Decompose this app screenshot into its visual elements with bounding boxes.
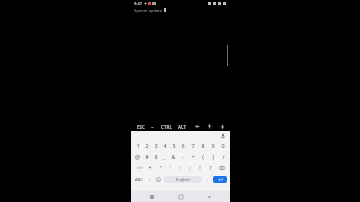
button[interactable]: ' — [165, 162, 175, 173]
button[interactable]: Up — [205, 122, 213, 131]
button[interactable]: Left — [193, 122, 201, 131]
staticText: ? — [209, 164, 212, 171]
staticText: ' — [169, 164, 171, 171]
button[interactable]: 1 — [133, 140, 142, 151]
staticText: / — [222, 153, 225, 160]
button[interactable]: Home — [174, 191, 188, 202]
button[interactable]: 9 — [208, 140, 218, 151]
staticText: 0 — [221, 142, 225, 149]
staticText: ) — [212, 153, 214, 160]
staticText: ESC — [137, 124, 145, 130]
button[interactable]: + — [188, 151, 198, 162]
staticText: 7 — [191, 142, 195, 149]
button[interactable]: Down — [218, 122, 226, 131]
button[interactable]: # — [142, 151, 151, 162]
button[interactable]: - — [178, 151, 188, 162]
button[interactable]: =\< — [133, 162, 145, 173]
button[interactable]: , — [145, 174, 154, 185]
button[interactable]: 0 — [218, 140, 228, 151]
button[interactable]: * — [145, 162, 155, 173]
button[interactable]: ~ — [150, 122, 155, 131]
button[interactable]: $ — [151, 151, 160, 162]
staticText: 3 — [154, 142, 158, 149]
button[interactable]: & — [169, 151, 178, 162]
staticText: ~ — [151, 124, 154, 130]
button[interactable]: 7 — [188, 140, 198, 151]
staticText: & — [171, 153, 176, 160]
button[interactable]: @ — [133, 151, 142, 162]
button[interactable]: Recents — [145, 191, 159, 202]
button[interactable]: ESC — [136, 122, 146, 131]
staticText: ; — [189, 164, 191, 171]
button[interactable]: 3 — [151, 140, 160, 151]
staticText: 4 — [163, 142, 167, 149]
staticText: 2 — [145, 142, 149, 149]
staticText: English — [176, 177, 190, 182]
staticText: # — [145, 153, 149, 160]
staticText: ( — [202, 153, 204, 160]
staticText: CTRL — [161, 124, 172, 130]
staticText: System update — [134, 8, 162, 13]
button[interactable]: ; — [185, 162, 195, 173]
button[interactable]: 4 — [160, 140, 169, 151]
button[interactable]: English — [164, 176, 202, 183]
button[interactable]: : — [175, 162, 185, 173]
button[interactable]: ! — [195, 162, 205, 173]
staticText: ABC — [135, 177, 143, 182]
staticText: 8 — [201, 142, 205, 149]
staticText: ! — [199, 164, 201, 171]
button[interactable]: Voice input — [218, 131, 227, 140]
button[interactable]: ? — [205, 162, 215, 173]
staticText: * — [148, 164, 152, 171]
button[interactable]: ( — [198, 151, 208, 162]
button[interactable]: " — [155, 162, 165, 173]
staticText: 1 — [136, 142, 140, 149]
button[interactable]: ) — [208, 151, 218, 162]
button[interactable]: Emoji — [154, 174, 163, 185]
staticText: . — [207, 176, 209, 183]
button[interactable]: 2 — [142, 140, 151, 151]
button[interactable]: Back — [202, 191, 216, 202]
staticText: 6 — [181, 142, 185, 149]
staticText: , — [149, 176, 151, 183]
staticText: 9:47 — [134, 1, 142, 6]
button[interactable]: Enter — [213, 176, 227, 183]
button[interactable]: _ — [160, 151, 169, 162]
staticText: 5 — [172, 142, 176, 149]
staticText: - — [182, 153, 184, 160]
button[interactable]: / — [218, 151, 228, 162]
button[interactable]: CTRL — [160, 122, 173, 131]
button[interactable]: 6 — [178, 140, 188, 151]
button[interactable]: 5 — [169, 140, 178, 151]
staticText: _ — [163, 153, 166, 160]
button[interactable]: 8 — [198, 140, 208, 151]
staticText: $ — [154, 153, 158, 160]
staticText: " — [159, 164, 162, 171]
button[interactable]: . — [203, 174, 212, 185]
staticText: ALT — [178, 124, 187, 130]
staticText: =\< — [136, 165, 143, 170]
staticText: : — [179, 164, 181, 171]
button[interactable]: ALT — [177, 122, 188, 131]
button[interactable]: ABC — [133, 174, 145, 185]
staticText: + — [191, 153, 195, 160]
staticText: 9 — [211, 142, 215, 149]
staticText: @ — [135, 153, 140, 160]
button[interactable]: Backspace — [215, 162, 228, 173]
